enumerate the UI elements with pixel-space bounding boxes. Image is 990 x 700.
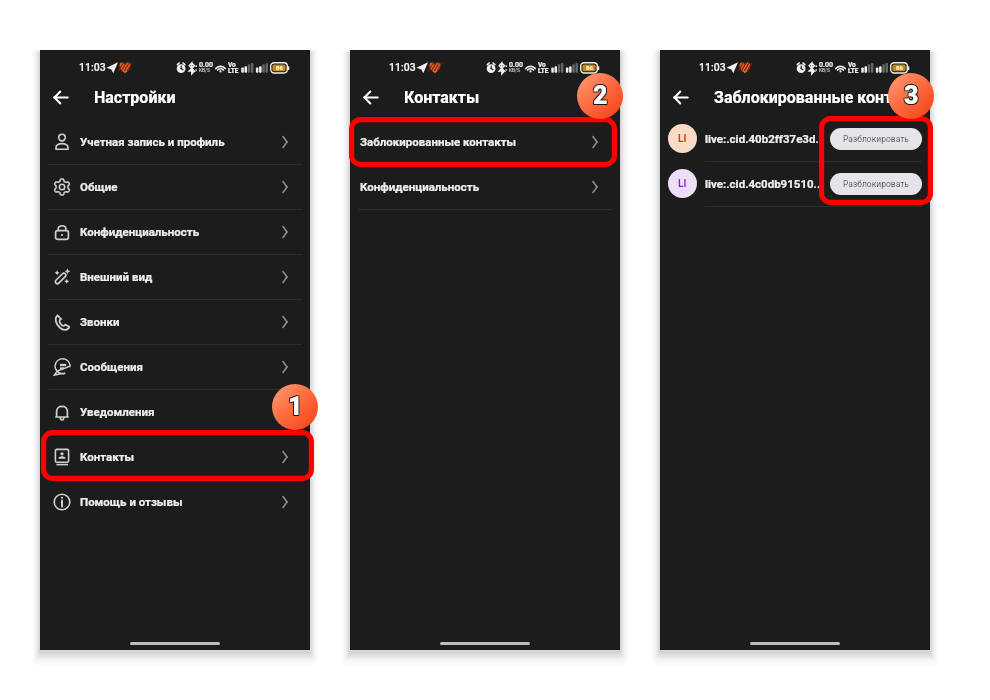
button[interactable]: Заблокированные контакты: [350, 119, 620, 164]
staticText: 0.00: [199, 61, 213, 69]
button[interactable]: Назад: [361, 86, 385, 110]
staticText: Настройки: [94, 88, 176, 107]
staticText: Конфиденциальность: [80, 225, 200, 238]
button[interactable]: Конфиденциальность: [40, 209, 310, 254]
staticText: live:.cid.4c0db91510...: [705, 177, 824, 190]
staticText: Заблокированные контакты: [360, 135, 517, 148]
button[interactable]: Назад: [51, 86, 75, 110]
button[interactable]: Уведомления: [40, 389, 310, 434]
staticText: LTE: [848, 67, 859, 75]
button[interactable]: Учетная запись и профиль: [40, 119, 310, 164]
staticText: 3: [905, 80, 920, 109]
button[interactable]: LI: [660, 116, 930, 161]
button[interactable]: Внешний вид: [40, 254, 310, 299]
staticText: Заблокированные контакты: [714, 88, 930, 107]
staticText: 2: [592, 82, 607, 111]
staticText: KB/S: [509, 68, 520, 74]
staticText: 1: [289, 391, 304, 420]
staticText: 86: [276, 64, 283, 71]
staticText: 86: [896, 64, 903, 71]
staticText: 3: [904, 82, 919, 111]
staticText: 1: [287, 391, 302, 420]
staticText: Разблокировать: [843, 179, 909, 189]
staticText: 11:03: [699, 61, 726, 73]
staticText: 2: [594, 80, 609, 109]
button[interactable]: Конфиденциальность: [350, 164, 620, 209]
button[interactable]: LI: [660, 161, 930, 206]
button[interactable]: Разблокировать: [830, 128, 922, 150]
button[interactable]: Помощь и отзывы: [40, 479, 310, 524]
button[interactable]: Общие: [40, 164, 310, 209]
staticText: 1: [288, 392, 303, 421]
staticText: 2: [593, 80, 608, 109]
staticText: Уведомления: [80, 405, 155, 418]
staticText: Внешний вид: [80, 270, 153, 283]
button[interactable]: Разблокировать: [830, 173, 922, 195]
staticText: 3: [905, 82, 920, 111]
staticText: 1: [287, 393, 302, 422]
staticText: 1: [287, 392, 302, 421]
button[interactable]: Звонки: [40, 299, 310, 344]
staticText: 3: [905, 81, 920, 110]
staticText: Помощь и отзывы: [80, 495, 183, 508]
staticText: KB/S: [819, 68, 830, 74]
staticText: 11:03: [79, 61, 106, 73]
staticText: LTE: [538, 67, 549, 75]
button[interactable]: Сообщения: [40, 344, 310, 389]
staticText: 2: [594, 81, 609, 110]
staticText: LTE: [228, 67, 239, 75]
staticText: 11:03: [389, 61, 416, 73]
staticText: 3: [903, 81, 918, 110]
staticText: 2: [593, 82, 608, 111]
staticText: 0.00: [509, 61, 523, 69]
staticText: 0.00: [819, 61, 833, 69]
staticText: Vo: [228, 61, 236, 69]
staticText: 1: [288, 393, 303, 422]
staticText: Учетная запись и профиль: [80, 135, 225, 148]
staticText: Vo: [848, 61, 856, 69]
staticText: 2: [594, 82, 609, 111]
staticText: Конфиденциальность: [360, 180, 480, 193]
staticText: 2: [593, 81, 608, 110]
staticText: KB/S: [199, 68, 210, 74]
staticText: 2: [592, 81, 607, 110]
button[interactable]: Назад: [671, 86, 695, 110]
staticText: 3: [903, 82, 918, 111]
staticText: 3: [904, 80, 919, 109]
staticText: 2: [592, 80, 607, 109]
staticText: 3: [904, 81, 919, 110]
staticText: Контакты: [404, 88, 480, 107]
staticText: LI: [678, 178, 687, 190]
staticText: Сообщения: [80, 360, 143, 373]
button[interactable]: Контакты: [40, 434, 310, 479]
staticText: Vo: [538, 61, 546, 69]
staticText: 1: [288, 391, 303, 420]
staticText: Общие: [80, 180, 118, 193]
staticText: Контакты: [80, 450, 135, 463]
staticText: 1: [289, 392, 304, 421]
staticText: 1: [289, 393, 304, 422]
staticText: 3: [903, 80, 918, 109]
staticText: 86: [586, 64, 593, 71]
staticText: LI: [678, 133, 687, 145]
staticText: live:.cid.40b2ff37e3d..: [705, 132, 823, 145]
staticText: Разблокировать: [843, 134, 909, 144]
staticText: Звонки: [80, 315, 120, 328]
